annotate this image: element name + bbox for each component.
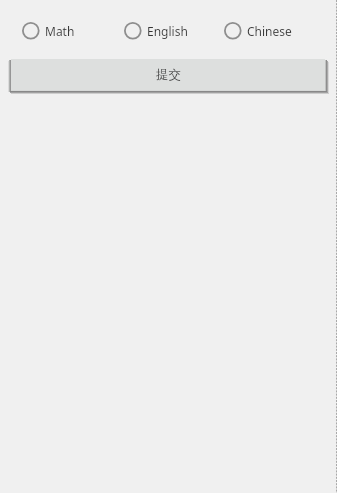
staticText: Math [45,23,75,39]
button[interactable]: Math [22,22,75,40]
staticText: English [147,23,188,39]
staticText: Chinese [247,23,292,39]
staticText: 提交 [156,67,181,83]
button[interactable]: Chinese [224,22,292,40]
button[interactable]: English [124,22,188,40]
button[interactable]: 提交 [11,59,325,91]
